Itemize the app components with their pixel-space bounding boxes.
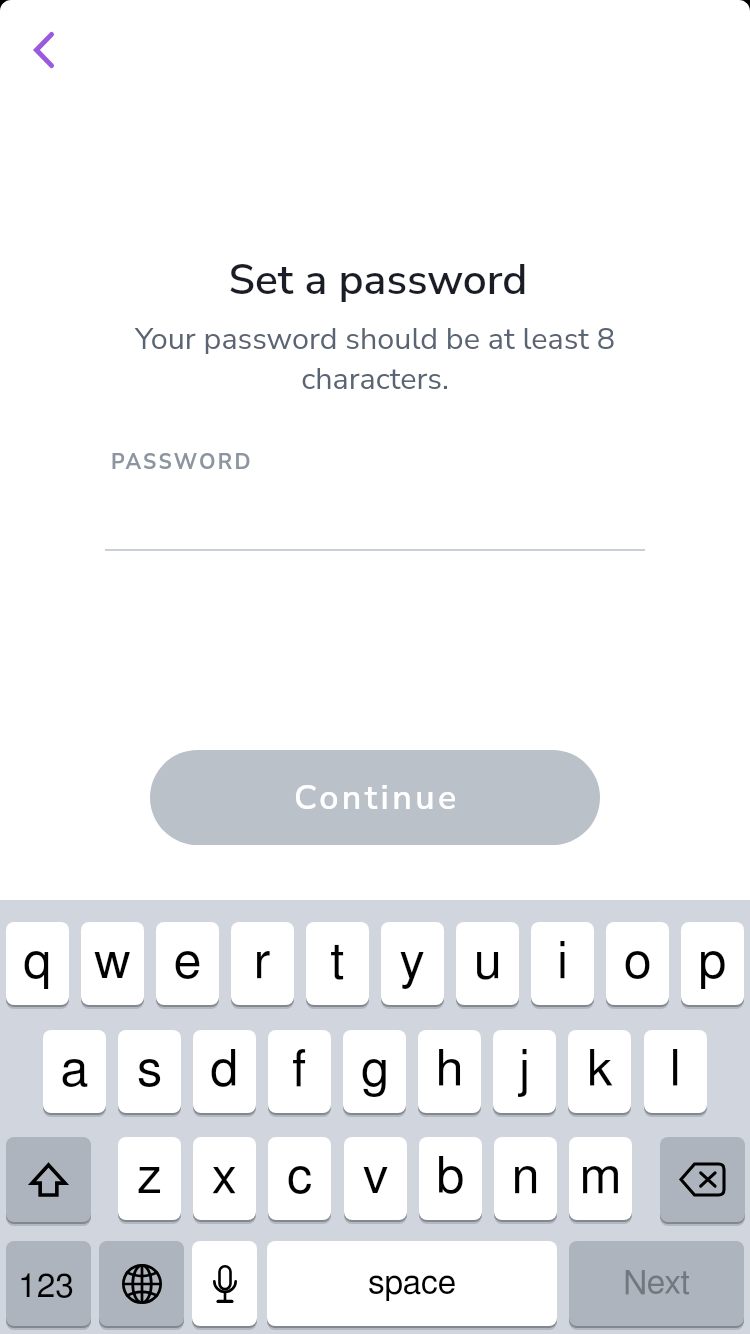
button[interactable]: g (343, 1030, 406, 1113)
button[interactable]: u (456, 922, 519, 1005)
button[interactable]: n (494, 1137, 557, 1220)
button[interactable]: w (81, 922, 144, 1005)
staticText: PASSWORD (111, 448, 253, 477)
staticText: a (61, 1046, 89, 1097)
staticText: e (174, 938, 201, 989)
staticText: u (474, 938, 502, 989)
button[interactable]: f (268, 1030, 331, 1113)
button[interactable]: s (118, 1030, 181, 1113)
staticText: q (23, 938, 52, 989)
staticText: f (292, 1046, 307, 1097)
button[interactable]: e (156, 922, 219, 1005)
button[interactable]: Shift (6, 1137, 91, 1222)
button[interactable]: y (381, 922, 444, 1005)
staticText: s (137, 1046, 162, 1097)
button[interactable]: space (267, 1241, 557, 1326)
staticText: Set a password (3, 251, 750, 309)
button[interactable]: k (568, 1030, 631, 1113)
staticText: h (436, 1046, 464, 1097)
button[interactable]: t (306, 922, 369, 1005)
button[interactable]: c (268, 1137, 331, 1220)
button[interactable]: i (531, 922, 594, 1005)
button[interactable]: b (419, 1137, 482, 1220)
staticText: w (94, 938, 131, 989)
staticText: l (670, 1046, 681, 1097)
staticText: y (400, 938, 425, 989)
staticText: p (698, 938, 727, 989)
staticText: Next (623, 1267, 690, 1301)
staticText: z (137, 1153, 162, 1204)
button[interactable]: p (681, 922, 744, 1005)
button[interactable]: Continue (150, 750, 600, 845)
button[interactable]: o (606, 922, 669, 1005)
button[interactable]: 123 (6, 1241, 91, 1326)
button[interactable]: q (6, 922, 69, 1005)
staticText: b (436, 1153, 465, 1204)
button[interactable]: Voice input (192, 1241, 257, 1326)
button[interactable]: z (118, 1137, 181, 1220)
button[interactable]: Change keyboard (99, 1241, 184, 1326)
staticText: r (254, 938, 271, 989)
button[interactable]: r (231, 922, 294, 1005)
button[interactable]: Back (4, 16, 84, 84)
button[interactable]: j (493, 1030, 556, 1113)
button[interactable]: v (344, 1137, 407, 1220)
staticText: o (624, 938, 651, 989)
staticText: Continue (294, 775, 460, 821)
button[interactable]: x (193, 1137, 256, 1220)
button[interactable]: Next (569, 1241, 744, 1326)
button[interactable]: m (569, 1137, 632, 1220)
staticText: m (580, 1153, 622, 1204)
staticText: k (587, 1046, 613, 1097)
staticText: d (210, 1046, 239, 1097)
staticText: j (518, 1046, 531, 1097)
staticText: i (557, 938, 569, 989)
staticText: 123 (18, 1270, 74, 1304)
button[interactable]: l (644, 1030, 707, 1113)
button[interactable]: h (418, 1030, 481, 1113)
staticText: g (361, 1046, 389, 1097)
staticText: n (512, 1153, 540, 1204)
button[interactable]: Backspace (660, 1137, 745, 1222)
staticText: space (368, 1267, 456, 1301)
staticText: v (363, 1153, 389, 1204)
button[interactable]: d (193, 1030, 256, 1113)
staticText: x (212, 1153, 237, 1204)
button[interactable]: a (43, 1030, 106, 1113)
staticText: t (330, 938, 345, 989)
staticText: c (287, 1153, 313, 1204)
button[interactable]: PASSWORD (105, 440, 645, 551)
staticText: Your password should be at least 8 chara… (110, 318, 640, 399)
